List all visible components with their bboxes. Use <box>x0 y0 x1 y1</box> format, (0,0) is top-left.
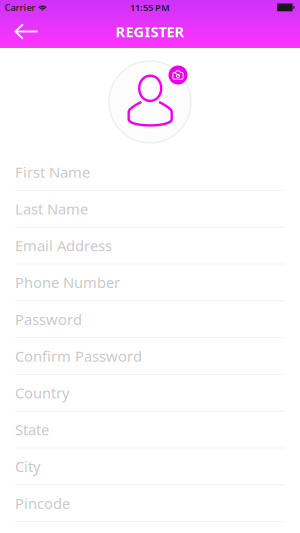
button[interactable]: Back <box>0 15 42 48</box>
button[interactable]: Last Name <box>15 191 285 228</box>
staticText: State <box>15 420 49 439</box>
staticText: Country <box>15 383 69 403</box>
button[interactable]: Phone Number <box>15 264 285 301</box>
staticText: Email Address <box>15 236 112 255</box>
staticText: City <box>15 457 40 476</box>
staticText: Pincode <box>15 493 70 513</box>
staticText: 11:55 PM <box>130 1 170 14</box>
button[interactable]: Pincode <box>15 485 285 522</box>
button[interactable]: Confirm Password <box>15 338 285 375</box>
button[interactable]: Country <box>15 375 285 412</box>
staticText: REGISTER <box>115 22 184 41</box>
button[interactable]: First Name <box>15 154 285 191</box>
staticText: First Name <box>15 162 90 182</box>
staticText: Confirm Password <box>15 346 142 366</box>
button[interactable]: City <box>15 448 285 485</box>
button[interactable]: Password <box>15 301 285 338</box>
button[interactable]: State <box>15 412 285 448</box>
button[interactable]: Email Address <box>15 228 285 264</box>
staticText: Password <box>15 309 82 329</box>
staticText: Carrier <box>4 1 35 14</box>
staticText: Phone Number <box>15 273 120 292</box>
button[interactable]: Change profile photo <box>168 65 187 84</box>
staticText: Last Name <box>15 199 88 219</box>
